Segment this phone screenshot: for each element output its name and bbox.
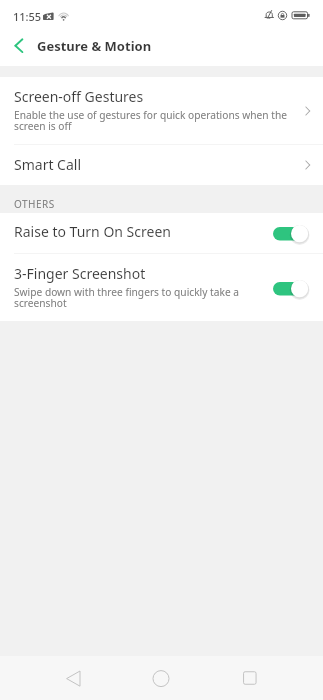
button[interactable]: Back <box>0 29 34 63</box>
button[interactable]: Toggle on <box>273 278 309 298</box>
staticText: Screen-off Gestures <box>14 87 144 106</box>
button[interactable]: Smart Call <box>0 145 323 185</box>
staticText: OTHERS <box>14 197 55 211</box>
staticText: 11:55 <box>13 9 42 24</box>
button[interactable]: Home <box>141 658 181 698</box>
staticText: Raise to Turn On Screen <box>14 222 171 241</box>
button[interactable]: Raise to Turn On Screen <box>0 213 323 253</box>
staticText: Swipe down with three fingers to quickly… <box>14 285 268 310</box>
button[interactable]: Screen-off Gestures <box>0 77 323 144</box>
staticText: Smart Call <box>14 155 82 174</box>
button[interactable]: 3-Finger Screenshot <box>0 254 323 321</box>
staticText: 3-Finger Screenshot <box>14 264 146 283</box>
button[interactable]: Recents <box>230 658 270 698</box>
button[interactable]: Back <box>53 658 93 698</box>
staticText: Enable the use of gestures for quick ope… <box>14 108 293 133</box>
button[interactable]: Toggle on <box>273 223 309 243</box>
staticText: Gesture & Motion <box>37 37 152 55</box>
